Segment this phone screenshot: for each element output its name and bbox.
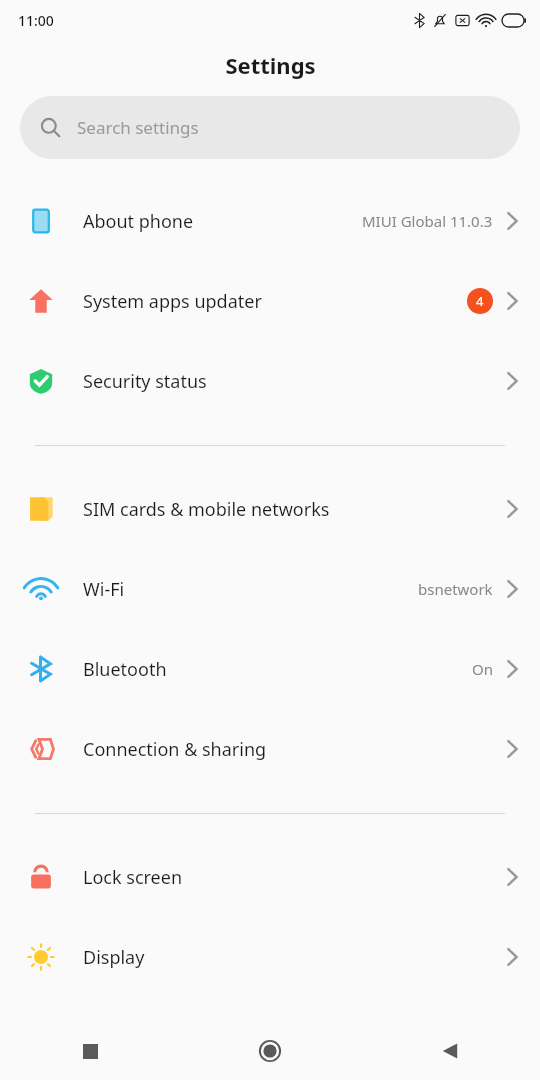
button[interactable]: Security status [0, 341, 540, 421]
staticText: Lock screen [83, 865, 183, 890]
staticText: Connection & sharing [83, 737, 267, 762]
button[interactable]: Connection & sharing [0, 709, 540, 789]
button[interactable]: Home [180, 1022, 360, 1080]
staticText: Bluetooth [83, 657, 167, 682]
button[interactable]: Display [0, 917, 540, 997]
staticText: MIUI Global 11.0.3 [362, 211, 493, 231]
staticText: Wi-Fi [83, 577, 125, 602]
staticText: About phone [83, 209, 194, 234]
button[interactable]: About phone [0, 181, 540, 261]
staticText: Display [83, 945, 145, 970]
staticText: System apps updater [83, 289, 262, 314]
button[interactable]: Bluetooth [0, 629, 540, 709]
button[interactable]: SIM cards & mobile networks [0, 469, 540, 549]
button[interactable]: Search settings [20, 96, 520, 159]
staticText: bsnetwork [418, 579, 493, 599]
button[interactable]: Lock screen [0, 837, 540, 917]
staticText: 11:00 [18, 11, 54, 30]
button[interactable]: Recents [0, 1022, 180, 1080]
staticText: Security status [83, 369, 207, 394]
button[interactable]: System apps updater [0, 261, 540, 341]
button[interactable]: Back [360, 1022, 540, 1080]
staticText: SIM cards & mobile networks [83, 497, 330, 522]
staticText: Search settings [77, 116, 199, 139]
staticText: Settings [225, 50, 316, 80]
button[interactable]: Wi-Fi [0, 549, 540, 629]
staticText: On [472, 659, 493, 679]
staticText: 4 [476, 292, 484, 310]
